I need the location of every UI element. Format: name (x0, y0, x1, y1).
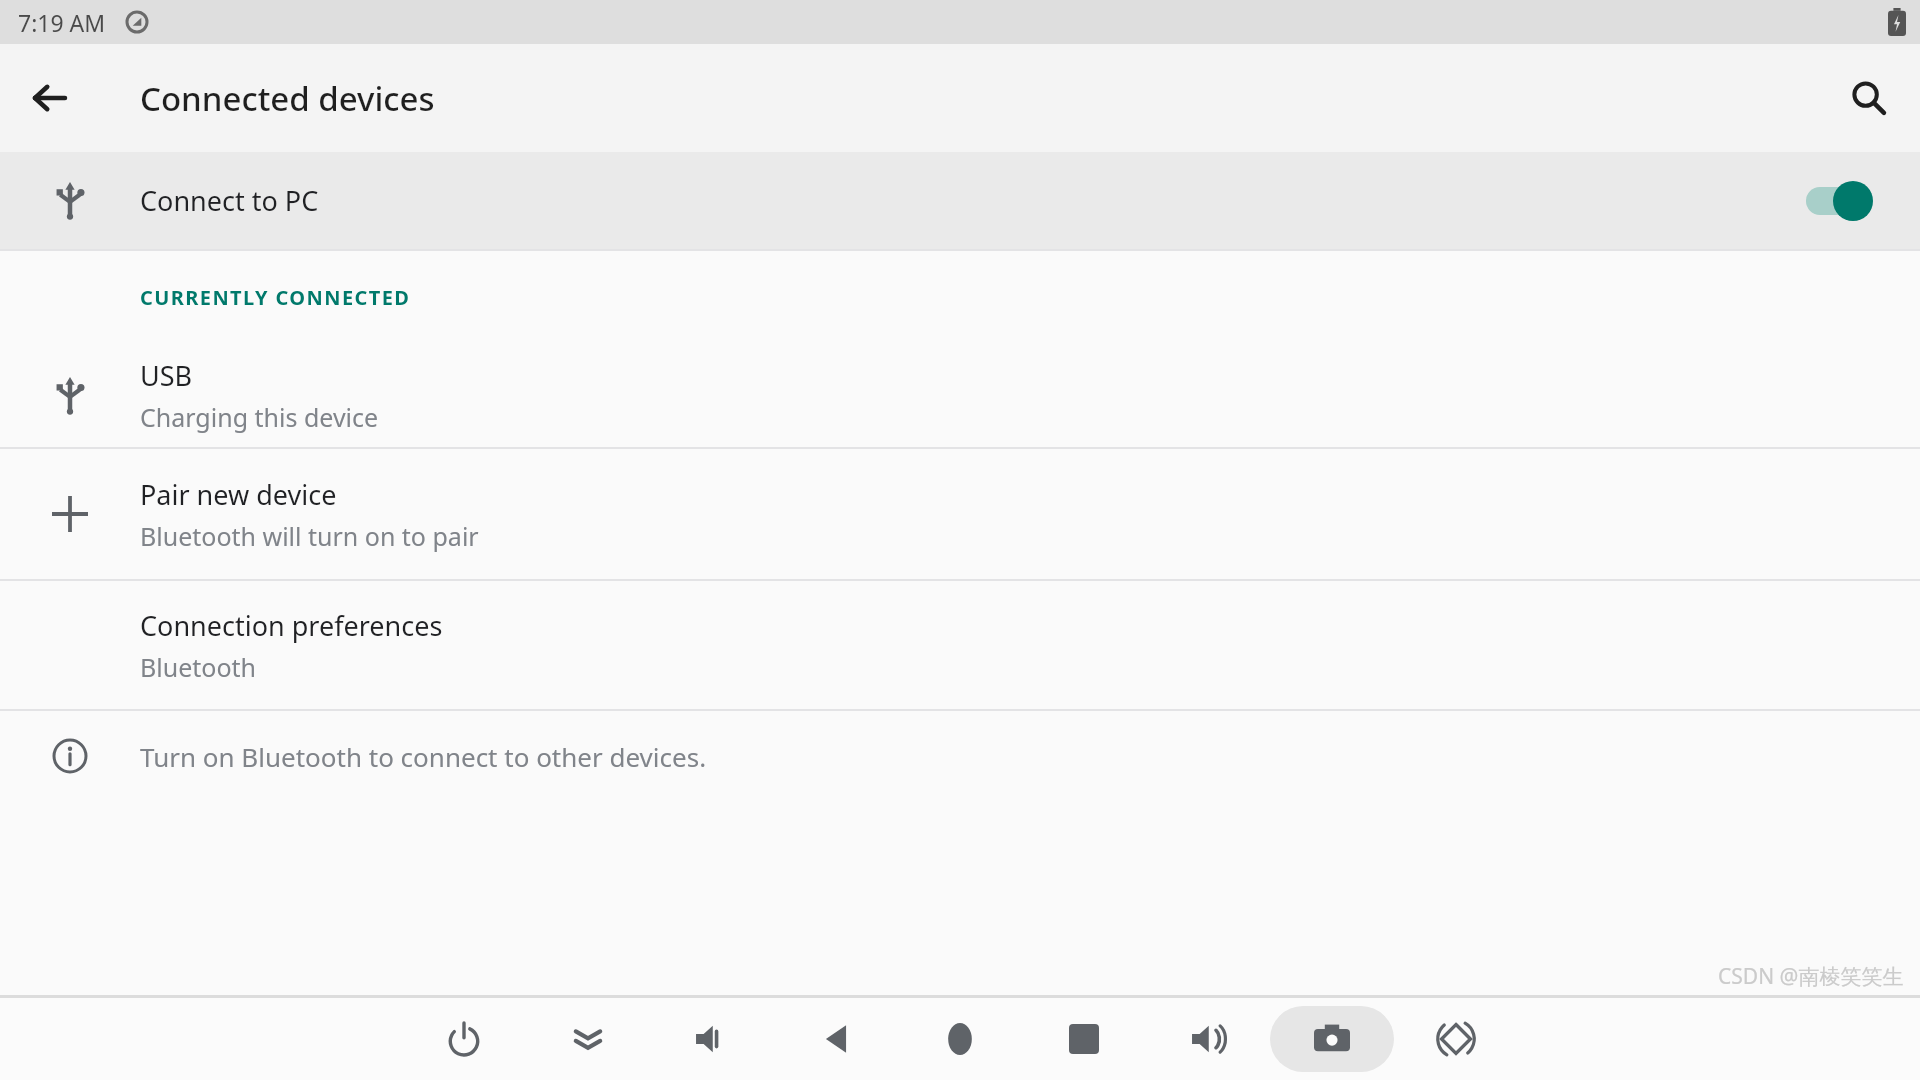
button[interactable]: Collapse (526, 1006, 650, 1072)
button[interactable]: Overview (1022, 1006, 1146, 1072)
button[interactable]: Pair new device (0, 449, 1920, 579)
button[interactable]: Screenshot (1270, 1006, 1394, 1072)
staticText: CURRENTLY CONNECTED (140, 284, 411, 311)
staticText: Connection preferences (140, 607, 443, 644)
staticText: Charging this device (140, 400, 379, 434)
button[interactable]: Home (898, 1006, 1022, 1072)
staticText: Pair new device (140, 476, 337, 513)
button[interactable]: Power (402, 1006, 526, 1072)
staticText: Connect to PC (140, 182, 319, 219)
button[interactable]: Connect to PC (0, 152, 1920, 249)
staticText: Connected devices (140, 76, 435, 121)
button[interactable]: Volume down (650, 1006, 774, 1072)
staticText: Turn on Bluetooth to connect to other de… (140, 739, 707, 774)
button[interactable]: Back (774, 1006, 898, 1072)
staticText: CSDN @南棱笑笑生 (1718, 962, 1904, 991)
button[interactable]: Search (1836, 65, 1902, 131)
button[interactable]: Volume up (1146, 1006, 1270, 1072)
staticText: 7:19 AM (18, 7, 106, 38)
button[interactable]: USB (0, 344, 1920, 447)
staticText: USB (140, 357, 193, 394)
staticText: Bluetooth (140, 650, 257, 684)
button[interactable]: Rotate (1394, 1006, 1518, 1072)
button[interactable]: Back (20, 68, 80, 128)
button[interactable]: Connection preferences (0, 581, 1920, 709)
staticText: Bluetooth will turn on to pair (140, 519, 479, 553)
button[interactable]: Turn on Bluetooth to connect to other de… (0, 711, 1920, 801)
